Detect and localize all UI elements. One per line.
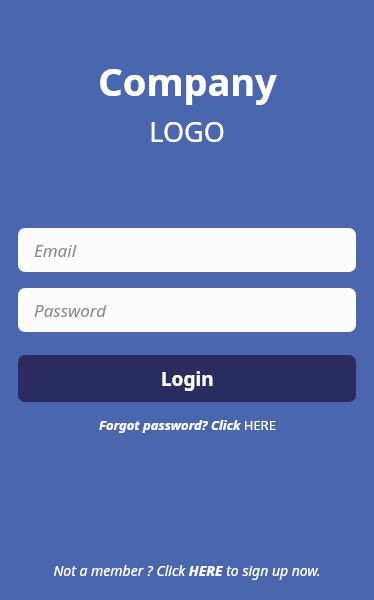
staticText: LOGO [149,113,225,150]
staticText: Forgot password? Click HERE [99,416,276,434]
button[interactable]: Login [18,355,356,402]
staticText: Company [98,55,277,107]
button[interactable]: Email [18,228,356,272]
button[interactable]: Not a member ? Click HERE to sign up now… [0,561,374,600]
staticText: Not a member ? Click HERE to sign up now… [53,561,321,580]
staticText: Password [34,299,107,322]
staticText: Email [34,239,77,262]
staticText: Login [161,366,214,392]
button[interactable]: Password [18,288,356,332]
button[interactable]: Forgot password? Click HERE [18,416,356,434]
